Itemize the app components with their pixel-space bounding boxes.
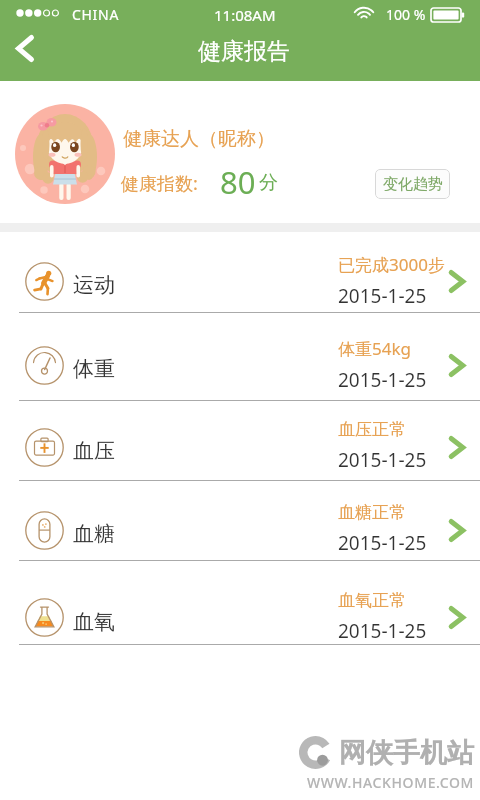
staticText: 变化趋势 bbox=[383, 175, 443, 194]
staticText: CHINA bbox=[72, 5, 120, 24]
staticText: 网侠手机站 bbox=[339, 736, 474, 770]
staticText: 健康指数: bbox=[121, 171, 198, 196]
staticText: 2015-1-25 bbox=[338, 447, 427, 473]
button[interactable]: Back bbox=[1, 26, 49, 71]
staticText: 血糖 bbox=[73, 521, 115, 547]
button[interactable]: 血压 bbox=[0, 401, 480, 479]
button[interactable]: 体重 bbox=[0, 313, 480, 400]
button[interactable]: 血糖 bbox=[0, 481, 480, 560]
staticText: 2015-1-25 bbox=[338, 530, 427, 556]
staticText: 80 bbox=[220, 161, 256, 203]
staticText: 11:08AM bbox=[214, 5, 276, 25]
staticText: 2015-1-25 bbox=[338, 283, 427, 309]
button[interactable]: 血氧 bbox=[0, 561, 480, 644]
staticText: 血压 bbox=[73, 438, 115, 464]
staticText: 体重 bbox=[73, 356, 115, 382]
staticText: 已完成3000步 bbox=[338, 253, 445, 276]
staticText: 血氧 bbox=[73, 609, 115, 635]
button[interactable]: 运动 bbox=[0, 232, 480, 312]
staticText: WWW.HACKHOME.COM bbox=[307, 773, 474, 792]
staticText: 运动 bbox=[73, 272, 115, 298]
staticText: 健康报告 bbox=[198, 37, 290, 66]
staticText: 分 bbox=[259, 171, 278, 195]
staticText: 2015-1-25 bbox=[338, 367, 427, 393]
button[interactable]: 变化趋势 bbox=[375, 169, 450, 199]
staticText: 体重54kg bbox=[338, 337, 411, 360]
staticText: 2015-1-25 bbox=[338, 618, 427, 644]
staticText: 血压正常 bbox=[338, 419, 406, 440]
staticText: 血氧正常 bbox=[338, 590, 406, 611]
staticText: 100 % bbox=[386, 5, 426, 24]
staticText: 血糖正常 bbox=[338, 502, 406, 523]
staticText: 健康达人（昵称） bbox=[123, 127, 275, 151]
